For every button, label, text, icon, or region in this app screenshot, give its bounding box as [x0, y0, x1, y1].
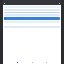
button[interactable]: Menu — [3, 2, 61, 5]
button[interactable] — [4, 17, 60, 20]
